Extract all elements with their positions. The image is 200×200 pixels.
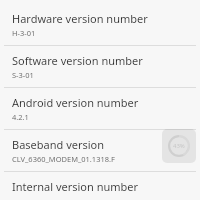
button[interactable]: Baseband version — [0, 130, 200, 172]
staticText: 43% — [173, 142, 185, 150]
staticText: H-3-01 — [12, 28, 36, 38]
button[interactable]: Software version number — [0, 46, 200, 88]
staticText: Android version number — [12, 95, 139, 110]
staticText: Software version number — [12, 53, 143, 68]
staticText: CLV_6360_MODEM_01.1318.F — [12, 154, 115, 164]
button[interactable]: Android version number — [0, 88, 200, 130]
button[interactable]: Internal version number — [0, 172, 200, 200]
other: Download progress 43 percent — [162, 129, 196, 163]
staticText: 4.2.1 — [12, 112, 29, 122]
staticText: Baseband version — [12, 137, 105, 152]
staticText: S-3-01 — [12, 70, 34, 80]
button[interactable]: Hardware version number — [0, 4, 200, 46]
staticText: Internal version number — [12, 179, 139, 193]
staticText: Hardware version number — [12, 11, 148, 26]
